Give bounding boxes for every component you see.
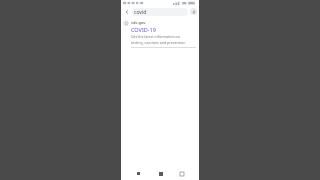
button[interactable]: cdc.gov <box>121 18 199 50</box>
button[interactable]: Back <box>123 8 131 16</box>
staticText: COVID-19 <box>131 26 156 33</box>
button[interactable]: Home <box>156 169 165 178</box>
button[interactable]: covid <box>132 8 188 16</box>
staticText: cdc.gov <box>131 20 146 25</box>
button[interactable]: Recent apps <box>177 169 186 178</box>
staticText: Get the latest information on COVID-19 s… <box>131 34 196 39</box>
staticText: testing, vaccines and prevention guidanc… <box>131 40 196 45</box>
button[interactable]: Account <box>190 8 197 15</box>
staticText: covid <box>134 9 147 16</box>
button[interactable]: Back <box>134 169 143 178</box>
